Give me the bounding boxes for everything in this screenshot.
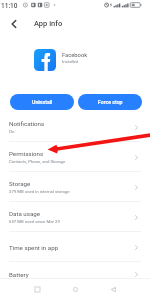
button[interactable]: Data usage bbox=[0, 202, 150, 232]
button[interactable]: Force stop bbox=[78, 94, 142, 110]
staticText: Contacts, Phone, and Storage bbox=[9, 159, 66, 164]
staticText: Data usage bbox=[9, 210, 41, 217]
staticText: Notifications bbox=[9, 120, 45, 127]
button[interactable]: Notifications bbox=[0, 112, 150, 142]
button[interactable]: Storage bbox=[0, 172, 150, 202]
button[interactable]: Back bbox=[3, 13, 24, 34]
staticText: Uninstall bbox=[32, 99, 53, 105]
staticText: 379 MB used in internal storage bbox=[9, 189, 70, 194]
button[interactable]: Time spent in app bbox=[0, 232, 150, 262]
staticText: Permissions bbox=[9, 150, 44, 157]
staticText: 11:10 bbox=[1, 2, 18, 10]
button[interactable]: Battery bbox=[0, 262, 150, 292]
staticText: Storage bbox=[9, 180, 31, 187]
staticText: On bbox=[9, 129, 15, 134]
staticText: Force stop bbox=[98, 99, 123, 105]
staticText: 657 MB used since Mar 29 bbox=[9, 219, 60, 224]
button[interactable]: Uninstall bbox=[10, 94, 74, 110]
button[interactable]: Permissions bbox=[0, 142, 150, 172]
staticText: Battery bbox=[9, 271, 29, 278]
staticText: Facebook bbox=[62, 52, 88, 59]
staticText: App info bbox=[34, 19, 63, 28]
staticText: Installed bbox=[62, 59, 79, 64]
button[interactable]: Back bbox=[101, 278, 125, 300]
button[interactable]: Home bbox=[63, 278, 87, 300]
staticText: Time spent in app bbox=[9, 244, 59, 251]
button[interactable]: Recent apps bbox=[25, 278, 49, 300]
